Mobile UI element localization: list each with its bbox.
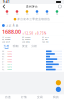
staticText: 换手 bbox=[42, 36, 44, 38]
button[interactable]: 研报 bbox=[42, 10, 52, 15]
staticText: 我的 bbox=[53, 95, 59, 99]
staticText: 卖一 bbox=[2, 61, 4, 62]
staticText: 明细 bbox=[13, 44, 19, 48]
staticText: 1686.5 bbox=[7, 69, 12, 70]
button[interactable]: 分析 bbox=[30, 44, 39, 49]
button[interactable]: Trade bbox=[56, 87, 61, 92]
staticText: 1687.0 bbox=[7, 66, 12, 68]
staticText: 1689.0 bbox=[7, 56, 12, 57]
staticText: 分析 bbox=[31, 44, 37, 48]
button[interactable]: 交易 bbox=[12, 10, 22, 15]
staticText: 量比 bbox=[42, 39, 44, 40]
button[interactable]: 分时 bbox=[32, 10, 42, 15]
staticText: 成交额 bbox=[22, 41, 25, 43]
button[interactable]: 我的 bbox=[48, 95, 64, 99]
button[interactable]: Back bbox=[2, 4, 6, 9]
staticText: 1675.00 bbox=[5, 36, 11, 38]
staticText: 1.08 bbox=[45, 39, 48, 40]
staticText: 1675.50 bbox=[5, 39, 11, 40]
staticText: 1699.00 bbox=[25, 36, 31, 38]
staticText: 买二 bbox=[2, 66, 4, 68]
staticText: 2.31万 bbox=[6, 41, 10, 43]
staticText: 成交量 bbox=[2, 41, 5, 43]
button[interactable]: Alerts bbox=[56, 80, 61, 85]
staticText: 自选 bbox=[6, 13, 8, 15]
staticText: 1687.5 bbox=[7, 63, 12, 65]
staticText: 卖五 bbox=[2, 50, 4, 52]
staticText: 市盈率 bbox=[42, 41, 45, 43]
staticText: 1690.0 bbox=[7, 50, 12, 52]
button[interactable]: 更多 bbox=[52, 10, 62, 15]
staticText: 1689.5 bbox=[7, 53, 12, 55]
staticText: 买一 bbox=[2, 63, 4, 65]
button[interactable]: 明细 bbox=[11, 44, 20, 49]
staticText: 1688.0 bbox=[7, 61, 12, 63]
staticText: 卖二 bbox=[2, 58, 4, 60]
staticText: 0.31% bbox=[45, 36, 49, 38]
button[interactable]: 五档 bbox=[2, 44, 11, 49]
button[interactable]: 资金 bbox=[20, 44, 30, 49]
button[interactable]: 资讯 bbox=[22, 10, 32, 15]
staticText: 资金 bbox=[22, 44, 28, 48]
button[interactable]: 茅台发布三季度业绩报告 bbox=[0, 16, 64, 22]
staticText: 38.9亿 bbox=[26, 41, 30, 43]
staticText: 1688.00 bbox=[2, 28, 21, 35]
staticText: 今开 bbox=[2, 36, 4, 38]
staticText: 上证 A 股 bbox=[6, 24, 19, 27]
staticText: 卖三 bbox=[2, 56, 4, 57]
staticText: 9:41 bbox=[3, 0, 10, 4]
button[interactable]: 交易 bbox=[32, 95, 48, 99]
staticText: 最高 bbox=[22, 36, 24, 38]
staticText: 贵州茅台 bbox=[26, 5, 38, 8]
staticText: 茅台发布三季度业绩报告 bbox=[17, 17, 50, 21]
button[interactable]: More bbox=[58, 5, 61, 8]
staticText: 1670.10 bbox=[25, 39, 31, 40]
staticText: 五档 bbox=[4, 44, 10, 48]
button[interactable]: 行情 bbox=[16, 95, 32, 99]
staticText: 1688.5 bbox=[7, 58, 12, 60]
staticText: 交易 bbox=[37, 95, 43, 99]
button[interactable]: 自选 bbox=[0, 95, 16, 99]
staticText: 研报 bbox=[46, 13, 48, 15]
staticText: +0.75% bbox=[35, 32, 46, 35]
button[interactable]: 自选 bbox=[2, 10, 12, 15]
staticText: 29.4 bbox=[46, 41, 49, 43]
staticText: +12.50 bbox=[22, 32, 33, 35]
staticText: 自选 bbox=[5, 95, 11, 99]
staticText: 行情 bbox=[21, 95, 27, 99]
staticText: 交易 bbox=[16, 13, 18, 15]
staticText: 更多 bbox=[56, 13, 58, 15]
